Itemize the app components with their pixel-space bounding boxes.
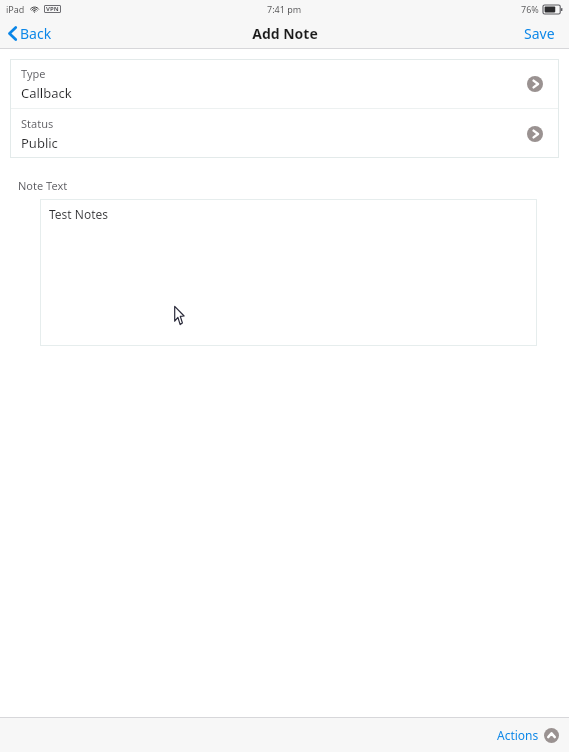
staticText: Status	[21, 116, 54, 131]
staticText: Save	[524, 24, 555, 43]
staticText: Actions	[497, 727, 539, 743]
button[interactable]: Test Notes	[40, 199, 537, 346]
staticText: Type	[21, 66, 46, 81]
button[interactable]: Status	[10, 109, 559, 158]
button[interactable]: Back	[0, 20, 62, 47]
staticText: 7:41 pm	[267, 3, 302, 15]
staticText: Back	[20, 24, 52, 43]
staticText: Add Note	[252, 24, 318, 43]
other: Open Status options	[527, 126, 543, 142]
button[interactable]: Save	[510, 19, 569, 48]
staticText: iPad	[6, 3, 25, 15]
other: Open Type options	[527, 76, 543, 92]
staticText: Test Notes	[49, 206, 109, 222]
button[interactable]: Type	[10, 59, 559, 108]
staticText: Note Text	[18, 178, 68, 193]
staticText: VPN	[46, 5, 59, 13]
staticText: 76%	[521, 3, 539, 15]
staticText: Callback	[21, 84, 72, 102]
button[interactable]: Actions	[493, 723, 563, 747]
staticText: Public	[21, 134, 58, 152]
